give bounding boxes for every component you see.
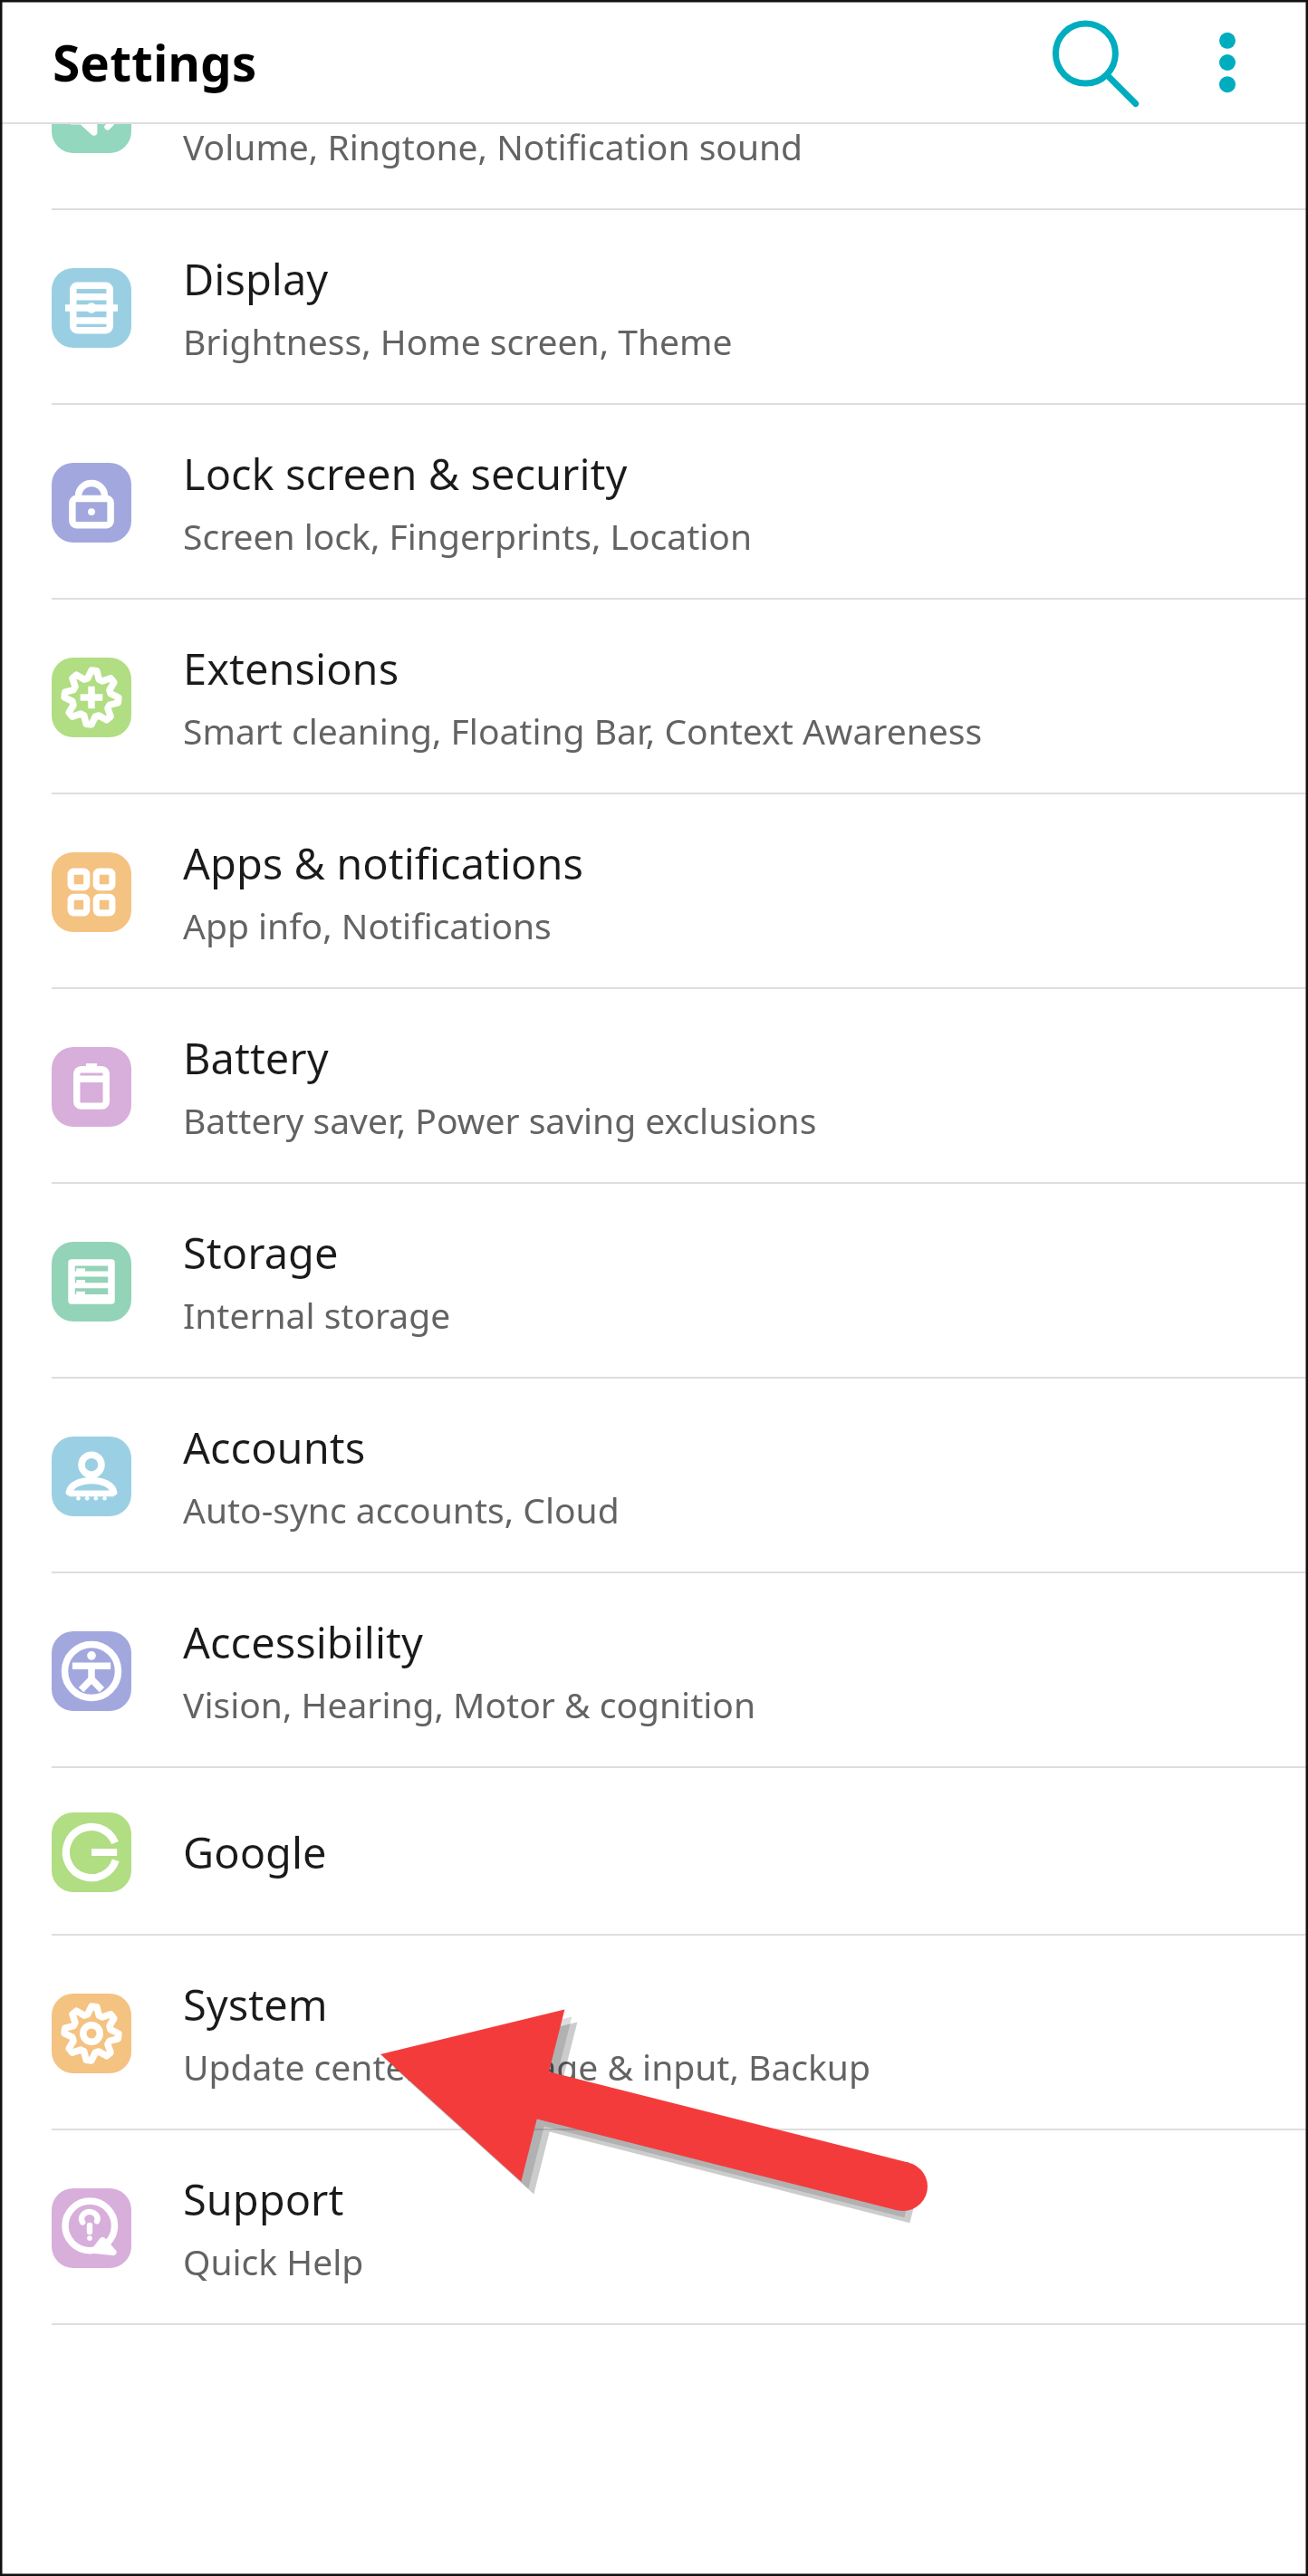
staticText: Google: [183, 1823, 327, 1881]
button[interactable]: Accessibility: [0, 1573, 1308, 1768]
staticText: Battery: [183, 1029, 329, 1087]
staticText: Quick Help: [183, 2237, 364, 2285]
button[interactable]: Accounts: [0, 1379, 1308, 1573]
button[interactable]: System: [0, 1936, 1308, 2130]
staticText: Internal storage: [183, 1291, 451, 1339]
button[interactable]: Display: [0, 210, 1308, 405]
button[interactable]: Extensions: [0, 600, 1308, 794]
button[interactable]: Battery: [0, 989, 1308, 1184]
button[interactable]: Storage: [0, 1184, 1308, 1379]
staticText: Accessibility: [183, 1613, 424, 1671]
button[interactable]: Lock screen & security: [0, 405, 1308, 600]
staticText: Settings: [53, 28, 257, 96]
staticText: Display: [183, 250, 329, 308]
button[interactable]: Sound: [0, 124, 1308, 210]
button[interactable]: More options: [1169, 0, 1286, 124]
staticText: Auto-sync accounts, Cloud: [183, 1485, 620, 1533]
staticText: Volume, Ringtone, Notification sound: [183, 124, 803, 170]
button[interactable]: Apps & notifications: [0, 794, 1308, 989]
staticText: Support: [183, 2170, 344, 2228]
staticText: Storage: [183, 1224, 339, 1282]
staticText: Smart cleaning, Floating Bar, Context Aw…: [183, 706, 983, 755]
button[interactable]: Search: [1024, 0, 1159, 124]
staticText: Apps & notifications: [183, 834, 584, 892]
staticText: Vision, Hearing, Motor & cognition: [183, 1680, 755, 1728]
staticText: Battery saver, Power saving exclusions: [183, 1096, 817, 1144]
staticText: Accounts: [183, 1418, 366, 1476]
staticText: Update center, Language & input, Backup: [183, 2043, 870, 2091]
staticText: System: [183, 1975, 328, 2033]
button[interactable]: Support: [0, 2130, 1308, 2325]
staticText: Extensions: [183, 639, 399, 697]
staticText: Screen lock, Fingerprints, Location: [183, 512, 753, 560]
button[interactable]: Google: [0, 1768, 1308, 1936]
staticText: Lock screen & security: [183, 445, 628, 503]
staticText: Brightness, Home screen, Theme: [183, 317, 733, 365]
staticText: App info, Notifications: [183, 901, 552, 949]
